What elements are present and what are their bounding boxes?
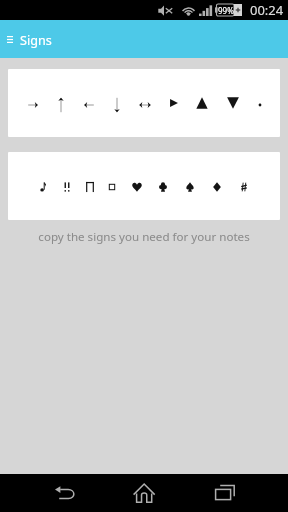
button[interactable]: Open navigation menu [0, 20, 20, 58]
staticText: copy the signs you need for your notes [0, 229, 288, 245]
staticText: 00:24 [250, 1, 284, 19]
button[interactable]: Small square [99, 172, 125, 202]
button[interactable]: Eighth note [30, 172, 56, 202]
button[interactable]: Diamond [204, 172, 230, 202]
button[interactable]: Up pointing triangle [189, 88, 215, 118]
button[interactable]: Up arrow [48, 90, 74, 120]
button[interactable]: Club [150, 172, 176, 202]
button[interactable]: Middle dot [247, 90, 273, 120]
button[interactable]: Left arrow [76, 90, 102, 120]
staticText: Signs [20, 32, 52, 49]
button[interactable]: Double exclamation mark [54, 172, 80, 202]
button[interactable]: Home [124, 476, 164, 510]
button[interactable]: Spade [177, 172, 203, 202]
button[interactable]: Right arrow [20, 90, 46, 120]
button[interactable]: Product sign [77, 172, 103, 202]
button[interactable]: Heart [124, 172, 150, 202]
button[interactable]: Left right arrow [132, 90, 158, 120]
button[interactable]: Recent apps [205, 478, 245, 508]
button[interactable]: Down pointing triangle [220, 88, 246, 118]
button[interactable]: Back [44, 478, 85, 508]
staticText: 99% [218, 5, 234, 16]
button[interactable]: Right pointing triangle [161, 88, 187, 118]
button[interactable]: Down arrow [104, 90, 130, 120]
button[interactable]: Sharp sign [231, 172, 257, 202]
